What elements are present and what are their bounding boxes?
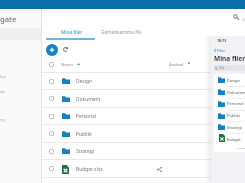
button[interactable]: [42, 125, 245, 143]
button[interactable]: Mina filer: [47, 26, 97, 38]
staticText: 10:13: [217, 38, 227, 43]
button[interactable]: Share: [156, 166, 163, 173]
staticText: Publikt: [76, 131, 92, 138]
staticText: Design: [227, 78, 241, 83]
button[interactable]: Sök: [214, 65, 245, 71]
staticText: Namn: [61, 62, 74, 68]
button[interactable]: [214, 133, 245, 145]
staticText: Design: [76, 78, 92, 85]
staticText: Sök: [219, 66, 225, 70]
button[interactable]: Refresh: [61, 45, 70, 54]
staticText: Mina filer: [61, 29, 83, 36]
staticText: org: [0, 117, 5, 123]
staticText: rup: [0, 89, 5, 95]
button[interactable]: [214, 98, 245, 110]
button[interactable]: [214, 121, 245, 133]
button[interactable]: Filer: [214, 48, 226, 53]
staticText: ckar: [0, 74, 7, 80]
button[interactable]: [214, 74, 245, 86]
button[interactable]: [214, 110, 245, 122]
button[interactable]: Create new: [46, 44, 58, 56]
staticText: Ändrad: [169, 62, 184, 68]
button[interactable]: [214, 86, 245, 98]
staticText: gate: [0, 14, 17, 24]
button[interactable]: [42, 160, 245, 178]
staticText: Mina filer: [214, 54, 245, 63]
staticText: Strategi: [76, 148, 94, 155]
staticText: Uppdaterad nyss: [236, 147, 245, 150]
staticText: Personal: [227, 101, 244, 106]
staticText: Personal: [76, 113, 97, 120]
button[interactable]: [42, 90, 245, 108]
staticText: Filer: [217, 48, 226, 53]
staticText: Dokument: [227, 90, 245, 95]
button[interactable]: [42, 143, 245, 160]
staticText: Dokument: [76, 96, 101, 103]
staticText: Gemensamma filer: [101, 29, 141, 36]
button[interactable]: [42, 108, 245, 125]
staticText: Budget: [227, 137, 241, 142]
button[interactable]: Gemensamma filer: [101, 26, 141, 38]
button[interactable]: [42, 73, 245, 90]
staticText: Budget.xlsx: [76, 166, 103, 173]
button[interactable]: Search: [231, 12, 241, 22]
staticText: Strategi: [227, 125, 242, 130]
staticText: Publikt: [227, 113, 240, 118]
